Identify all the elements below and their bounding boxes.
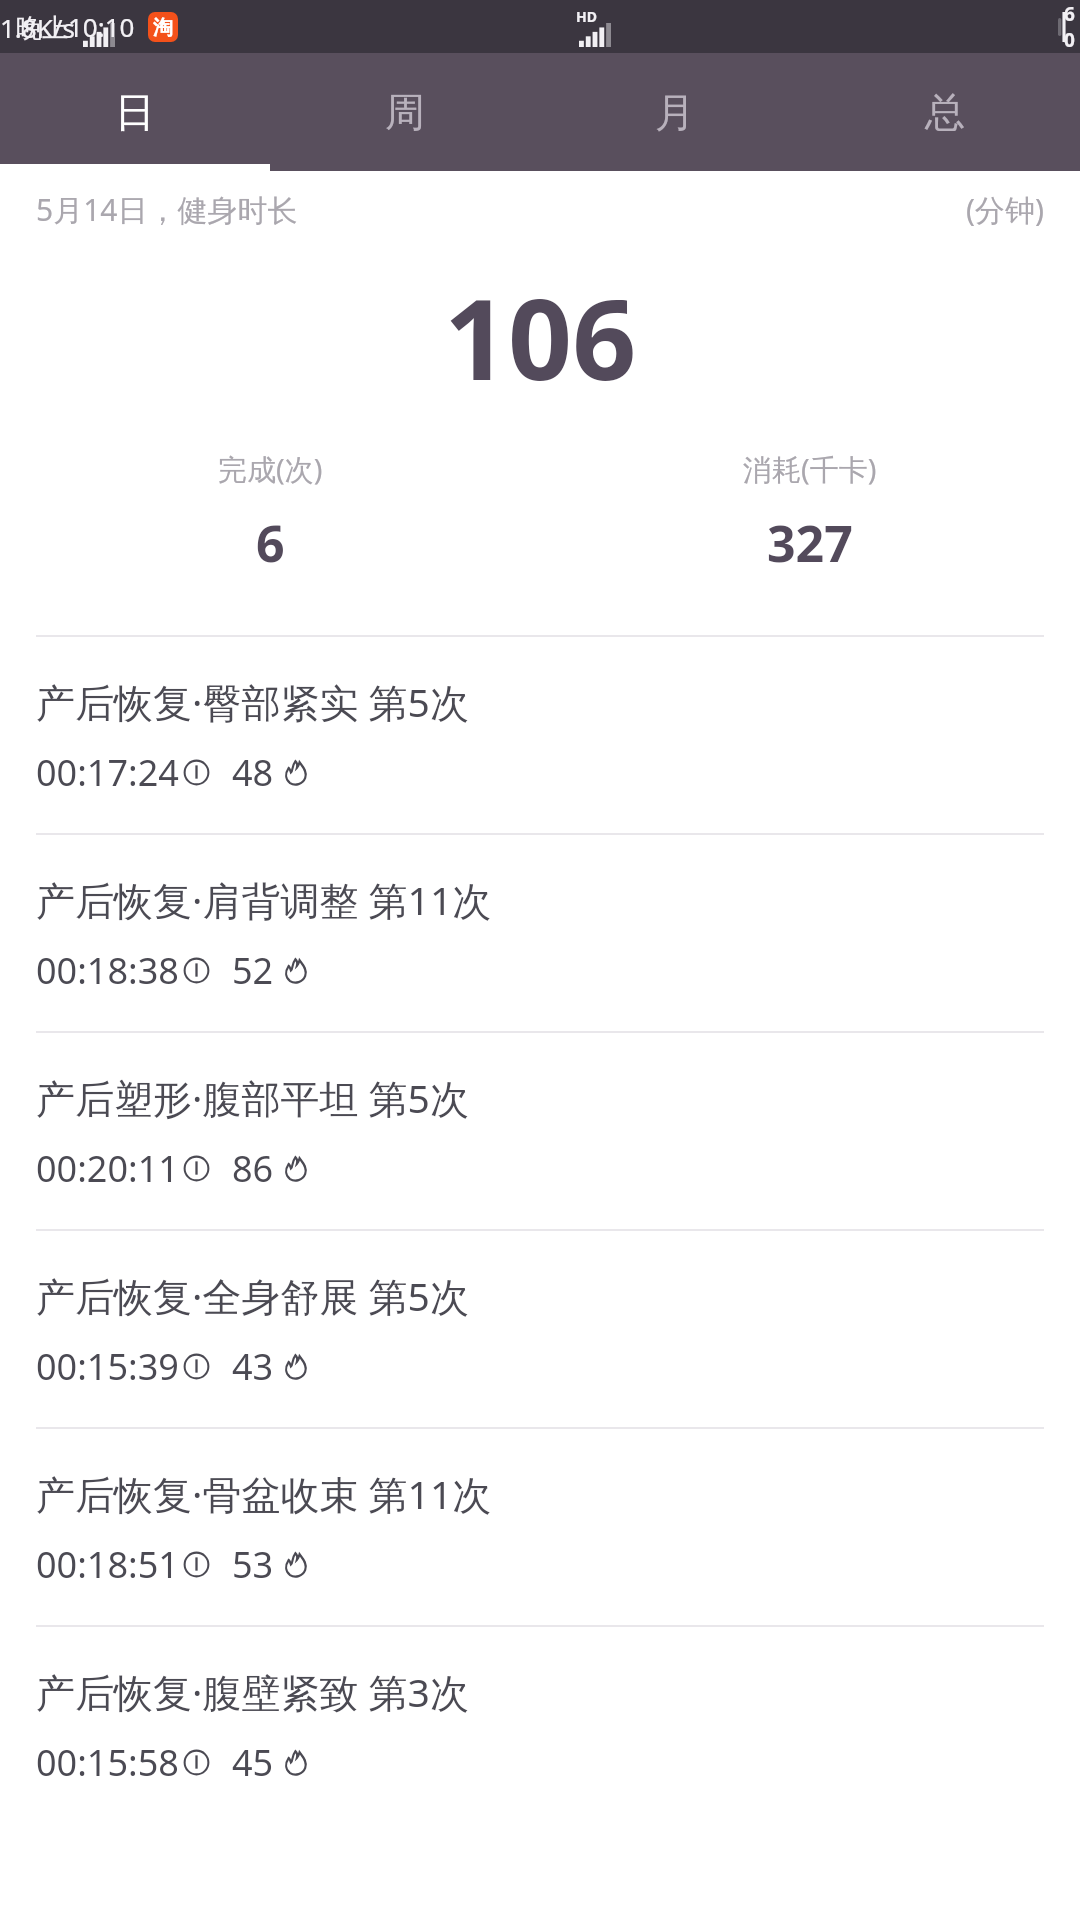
staticText: 周 — [385, 87, 425, 137]
staticText: 产后恢复·骨盆收束 第11次 — [36, 1467, 492, 1520]
staticText: 48 — [232, 748, 274, 797]
staticText: 45 — [232, 1738, 274, 1787]
staticText: 00:18:51 — [36, 1540, 179, 1589]
staticText: 产后恢复·腹壁紧致 第3次 — [36, 1665, 469, 1718]
button[interactable]: 产后恢复·腹壁紧致 第3次 — [0, 1627, 1080, 1823]
staticText: 晚上10:10 — [16, 9, 135, 45]
other: Calories — [282, 1551, 309, 1578]
staticText: 52 — [232, 946, 274, 995]
button[interactable]: 产后恢复·骨盆收束 第11次 — [0, 1429, 1080, 1625]
staticText: 327 — [767, 509, 853, 577]
staticText: 消耗(千卡) — [743, 449, 877, 489]
staticText: 产后恢复·肩背调整 第11次 — [36, 873, 492, 926]
other: Calories — [282, 759, 309, 786]
staticText: 月 — [655, 87, 695, 137]
staticText: 00:15:58 — [36, 1738, 179, 1787]
other: Duration — [183, 1749, 210, 1776]
other: Calories — [282, 1749, 309, 1776]
staticText: 00:20:11 — [36, 1144, 179, 1193]
staticText: HD — [576, 7, 597, 26]
staticText: 53 — [232, 1540, 274, 1589]
other: Calories — [282, 1353, 309, 1380]
other: Duration — [183, 759, 210, 786]
button[interactable]: 产后恢复·臀部紧实 第5次 — [0, 637, 1080, 833]
other: Duration — [183, 1551, 210, 1578]
staticText: 00:18:38 — [36, 946, 179, 995]
staticText: 产后恢复·臀部紧实 第5次 — [36, 675, 469, 728]
staticText: 6 — [256, 509, 285, 577]
button[interactable]: 总 — [810, 53, 1080, 171]
other: Duration — [183, 1155, 210, 1182]
staticText: 86 — [232, 1144, 274, 1193]
other: Duration — [183, 1353, 210, 1380]
button[interactable]: 产后塑形·腹部平坦 第5次 — [0, 1033, 1080, 1229]
staticText: 1.8K/s — [0, 10, 75, 45]
staticText: 日 — [115, 87, 155, 137]
other: Duration — [183, 957, 210, 984]
staticText: 106 — [444, 260, 637, 413]
staticText: 00:15:39 — [36, 1342, 179, 1391]
staticText: 产后塑形·腹部平坦 第5次 — [36, 1071, 469, 1124]
button[interactable]: 周 — [270, 53, 540, 171]
other: Calories — [282, 957, 309, 984]
staticText: 00:17:24 — [36, 748, 179, 797]
staticText: 产后恢复·全身舒展 第5次 — [36, 1269, 469, 1322]
staticText: 总 — [925, 87, 965, 137]
staticText: 淘 — [153, 15, 173, 40]
staticText: 5月14日，健身时长 — [36, 189, 298, 230]
staticText: (分钟) — [966, 189, 1044, 230]
other: Calories — [282, 1155, 309, 1182]
button[interactable]: 产后恢复·肩背调整 第11次 — [0, 835, 1080, 1031]
button[interactable]: 产后恢复·全身舒展 第5次 — [0, 1231, 1080, 1427]
button[interactable]: 日 — [0, 53, 270, 171]
button[interactable]: 月 — [540, 53, 810, 171]
staticText: 完成(次) — [218, 449, 323, 489]
staticText: 43 — [232, 1342, 274, 1391]
